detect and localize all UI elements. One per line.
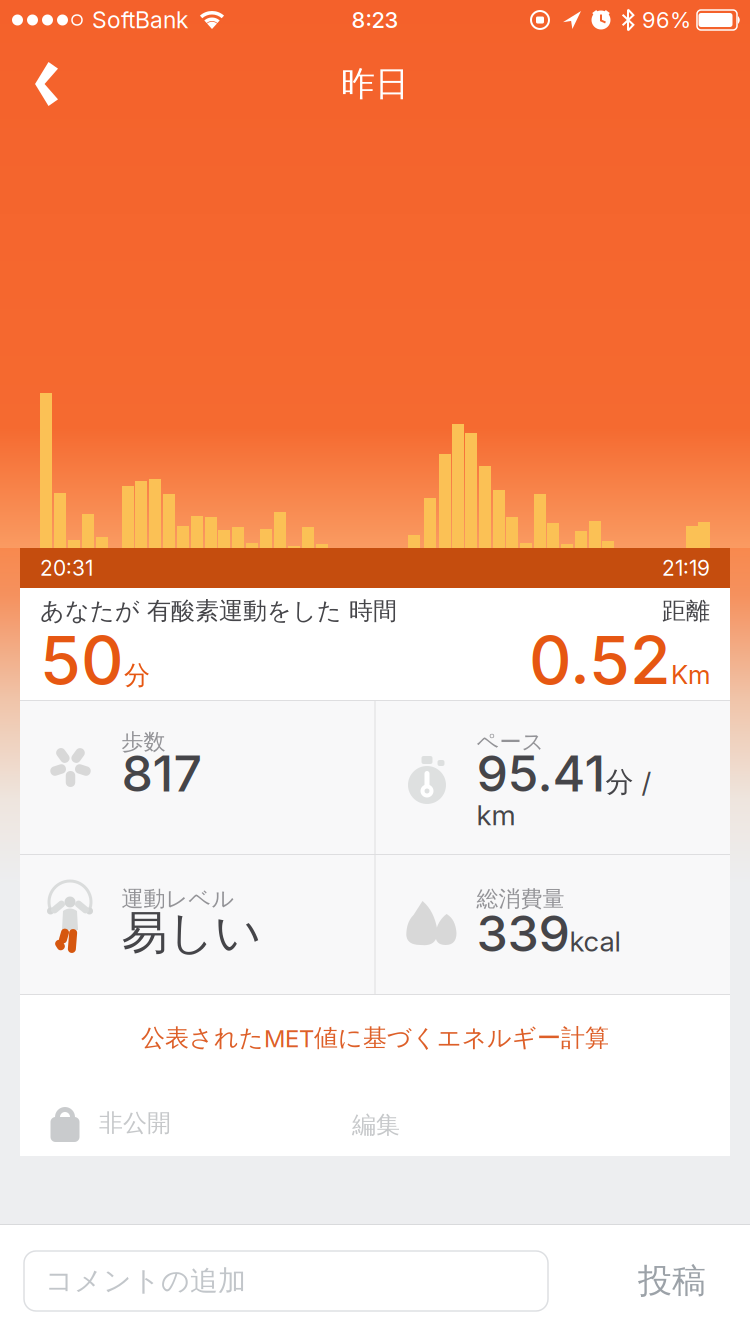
- staticText: 分 /: [605, 764, 651, 800]
- staticText: 339: [476, 903, 569, 963]
- staticText: 21:19: [662, 555, 710, 581]
- staticText: 投稿: [638, 1260, 706, 1302]
- staticText: 96%: [642, 7, 691, 33]
- staticText: 817: [121, 743, 202, 803]
- staticText: 距離: [662, 596, 710, 626]
- staticText: 0.52: [529, 620, 671, 700]
- staticText: 非公開: [99, 1108, 171, 1138]
- button[interactable]: 投稿: [638, 1260, 706, 1302]
- staticText: コメントの追加: [45, 1263, 246, 1299]
- staticText: ペース: [476, 728, 544, 756]
- staticText: kcal: [569, 924, 620, 958]
- staticText: SoftBank: [92, 6, 188, 34]
- staticText: 昨日: [341, 63, 409, 105]
- staticText: km: [476, 798, 515, 832]
- button[interactable]: 運動レベル: [20, 855, 374, 994]
- staticText: Km: [671, 659, 710, 690]
- staticText: 歩数: [121, 728, 165, 756]
- staticText: あなたが 有酸素運動をした 時間: [40, 596, 397, 626]
- staticText: 分: [124, 659, 150, 692]
- staticText: 総消費量: [476, 885, 564, 913]
- button[interactable]: コメントの追加: [24, 1251, 548, 1311]
- staticText: 20:31: [40, 555, 93, 581]
- staticText: 95.41: [476, 743, 605, 803]
- staticText: 編集: [352, 1110, 400, 1140]
- staticText: 運動レベル: [121, 885, 234, 913]
- button[interactable]: ペース: [375, 701, 729, 854]
- button[interactable]: Back: [0, 62, 80, 106]
- button[interactable]: 公表されたMET値に基づくエネルギー計算: [141, 995, 609, 1053]
- staticText: 易しい: [121, 904, 261, 962]
- staticText: 公表されたMET値に基づくエネルギー計算: [141, 1023, 609, 1053]
- button[interactable]: 編集: [352, 1110, 400, 1140]
- button[interactable]: 歩数: [20, 701, 374, 854]
- button[interactable]: 総消費量: [375, 855, 729, 994]
- button[interactable]: 非公開: [20, 1104, 171, 1142]
- staticText: 8:23: [351, 7, 398, 33]
- staticText: 50: [40, 620, 124, 700]
